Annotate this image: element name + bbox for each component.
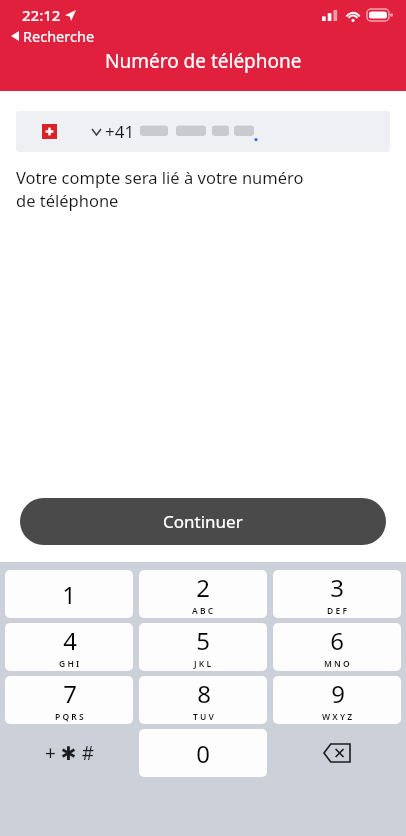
staticText: Recherche <box>23 26 95 46</box>
staticText: A B C <box>192 605 214 617</box>
staticText: 0 <box>196 737 210 770</box>
staticText: Continuer <box>163 510 243 533</box>
staticText: 6 <box>330 624 344 657</box>
staticText: +41 <box>105 120 135 143</box>
staticText: 22:12 <box>22 5 61 25</box>
button[interactable]: Delete <box>273 729 401 777</box>
staticText: D E F <box>327 605 347 617</box>
button[interactable]: 5 <box>139 623 267 671</box>
button[interactable]: 1 <box>5 570 133 618</box>
button[interactable]: Plus star hash <box>5 729 133 777</box>
button[interactable]: 2 <box>139 570 267 618</box>
staticText: J K L <box>194 658 212 670</box>
staticText: 8 <box>197 677 211 710</box>
staticText: W X Y Z <box>322 711 353 723</box>
staticText: 3 <box>330 571 344 604</box>
staticText: Votre compte sera lié à votre numéro de … <box>16 166 304 212</box>
button[interactable]: 4 <box>5 623 133 671</box>
button[interactable]: 0 <box>139 729 267 777</box>
button[interactable]: 9 <box>273 676 401 724</box>
staticText: T U V <box>193 711 214 723</box>
button[interactable]: 7 <box>5 676 133 724</box>
button[interactable]: 3 <box>273 570 401 618</box>
staticText: + ✱ # <box>45 740 94 766</box>
staticText: 7 <box>63 677 77 710</box>
button[interactable]: Recherche <box>8 24 98 48</box>
staticText: 5 <box>196 624 210 657</box>
button[interactable]: 6 <box>273 623 401 671</box>
staticText: 9 <box>331 677 345 710</box>
button[interactable]: 8 <box>139 676 267 724</box>
button[interactable]: Continuer <box>20 498 386 545</box>
staticText: M N O <box>324 658 350 670</box>
button[interactable]: +41 <box>16 111 390 152</box>
staticText: 2 <box>196 571 210 604</box>
staticText: Numéro de téléphone <box>105 48 302 74</box>
staticText: G H I <box>59 658 80 670</box>
staticText: 4 <box>63 624 77 657</box>
staticText: 1 <box>62 578 76 611</box>
staticText: P Q R S <box>55 711 84 723</box>
